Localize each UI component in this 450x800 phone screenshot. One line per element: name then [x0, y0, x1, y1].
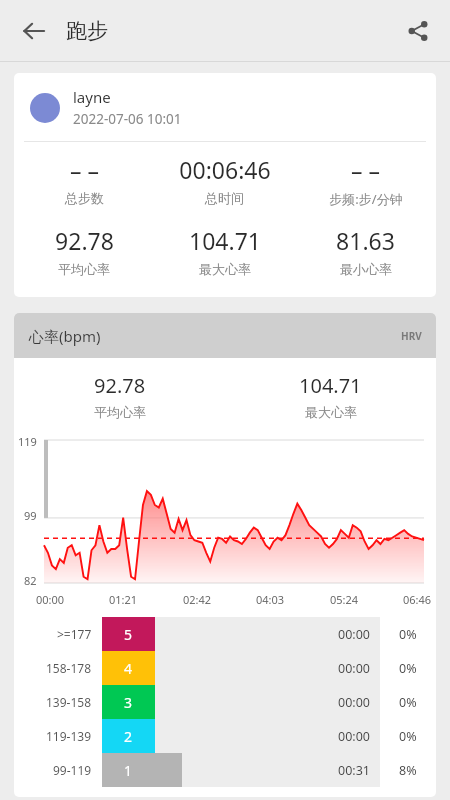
- staticText: 119: [18, 434, 37, 449]
- button[interactable]: 99-119: [14, 753, 436, 787]
- staticText: HRV: [401, 329, 422, 343]
- button[interactable]: Back: [12, 9, 56, 53]
- staticText: – –: [70, 154, 99, 185]
- staticText: 2: [124, 727, 133, 746]
- staticText: 104.71: [189, 225, 261, 256]
- staticText: 00:31: [338, 762, 370, 779]
- staticText: >=177: [57, 626, 92, 642]
- staticText: 最大心率: [305, 404, 357, 420]
- staticText: 3: [124, 693, 133, 712]
- staticText: 跑步: [66, 18, 108, 44]
- staticText: 最小心率: [340, 261, 392, 277]
- staticText: 4: [124, 659, 133, 678]
- staticText: 119-139: [46, 728, 92, 744]
- button[interactable]: 139-158: [14, 685, 436, 719]
- staticText: 总步数: [65, 190, 104, 206]
- button[interactable]: >=177: [14, 617, 436, 651]
- staticText: 158-178: [46, 660, 92, 676]
- staticText: 01:21: [109, 592, 138, 607]
- staticText: 99-119: [53, 762, 92, 778]
- button[interactable]: Share: [396, 9, 440, 53]
- button[interactable]: HRV: [401, 329, 422, 343]
- button[interactable]: 158-178: [14, 651, 436, 685]
- staticText: 最大心率: [199, 261, 251, 277]
- staticText: 00:06:46: [179, 154, 271, 185]
- staticText: 0%: [399, 728, 417, 745]
- staticText: 0%: [399, 660, 417, 677]
- staticText: 心率(bpm): [29, 326, 101, 346]
- staticText: 0%: [399, 694, 417, 711]
- staticText: 06:46: [403, 592, 432, 607]
- staticText: 139-158: [46, 694, 92, 710]
- staticText: 00:00: [36, 592, 65, 607]
- staticText: 00:00: [338, 660, 370, 677]
- staticText: 99: [24, 508, 37, 523]
- staticText: 04:03: [256, 592, 285, 607]
- staticText: 82: [24, 573, 37, 588]
- staticText: 5: [124, 625, 133, 644]
- staticText: 92.78: [55, 225, 114, 256]
- staticText: 104.71: [299, 372, 362, 399]
- staticText: 00:00: [338, 728, 370, 745]
- staticText: 总时间: [205, 190, 244, 206]
- staticText: 92.78: [94, 372, 146, 399]
- staticText: 平均心率: [94, 404, 146, 420]
- staticText: 平均心率: [58, 261, 110, 277]
- staticText: – –: [351, 154, 380, 185]
- staticText: 05:24: [330, 592, 359, 607]
- staticText: 0%: [399, 626, 417, 643]
- staticText: 步频:步/分钟: [329, 190, 403, 208]
- button[interactable]: 119-139: [14, 719, 436, 753]
- staticText: layne: [73, 87, 111, 107]
- staticText: 2022-07-06 10:01: [73, 110, 182, 128]
- staticText: 8%: [399, 762, 417, 779]
- staticText: 00:00: [338, 626, 370, 643]
- staticText: 02:42: [183, 592, 212, 607]
- staticText: 00:00: [338, 694, 370, 711]
- staticText: 1: [124, 761, 133, 780]
- staticText: 81.63: [336, 225, 395, 256]
